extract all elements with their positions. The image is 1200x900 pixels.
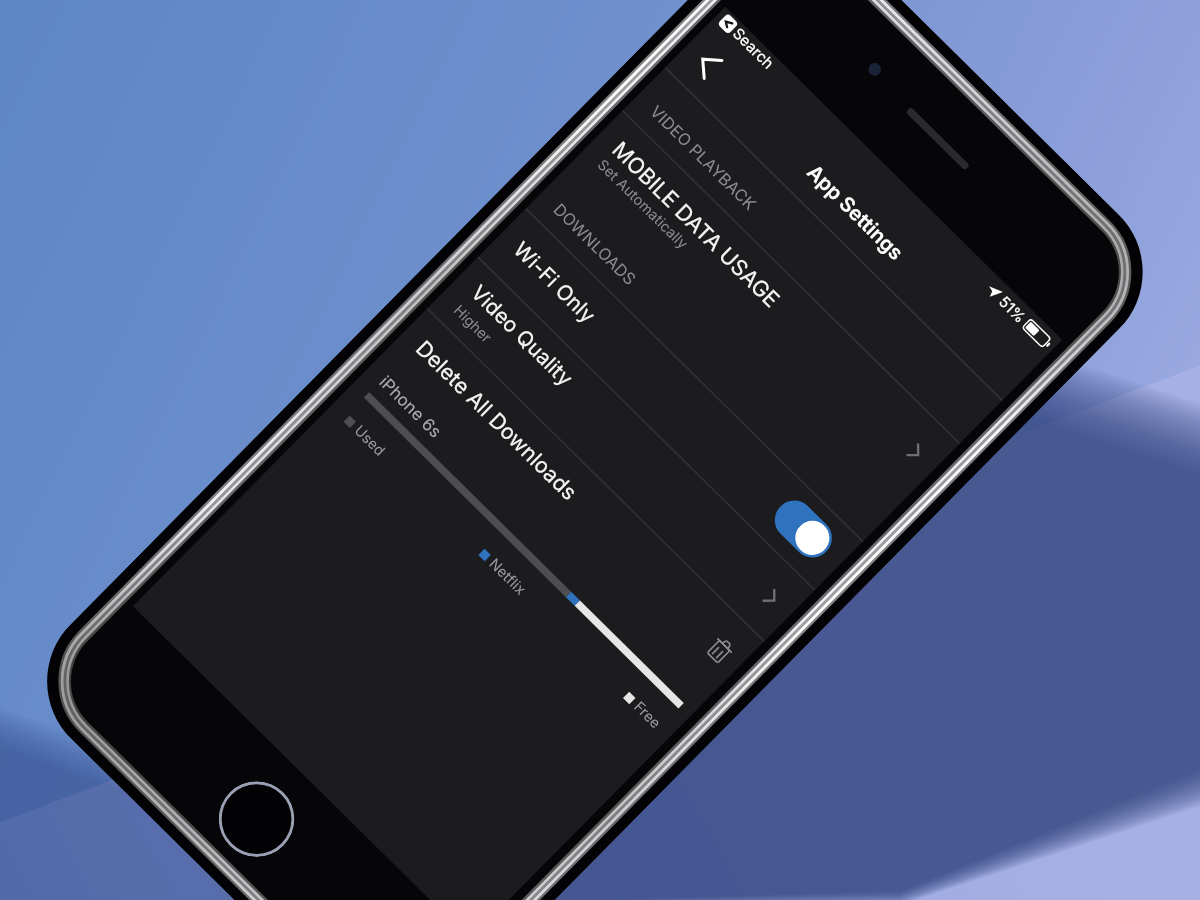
staticText: MOBILE DATA USAGE: [607, 136, 786, 313]
button[interactable]: Home: [203, 765, 310, 873]
staticText: Higher: [450, 301, 496, 347]
button[interactable]: Back: [668, 25, 747, 103]
staticText: App Settings: [803, 159, 910, 265]
staticText: Netflix: [485, 555, 529, 599]
button[interactable]: Delete All Downloads: [381, 308, 765, 688]
staticText: DOWNLOADS: [550, 199, 641, 290]
button[interactable]: Wi-Fi Only: [478, 208, 863, 590]
staticText: Video Quality: [466, 280, 578, 391]
button[interactable]: Wi-Fi Only switch, on: [767, 492, 840, 565]
staticText: 51%: [995, 292, 1030, 327]
staticText: Search: [729, 24, 778, 73]
button[interactable]: MOBILE DATA USAGE: [567, 110, 960, 500]
staticText: Set Automatically: [594, 156, 692, 253]
staticText: Delete All Downloads: [410, 336, 582, 506]
staticText: iPhone 6s: [375, 372, 446, 442]
staticText: VIDEO PLAYBACK: [646, 101, 761, 215]
staticText: Used: [351, 422, 389, 460]
button[interactable]: Video Quality: [428, 257, 815, 641]
staticText: Free: [630, 698, 664, 732]
staticText: Wi-Fi Only: [509, 237, 601, 328]
